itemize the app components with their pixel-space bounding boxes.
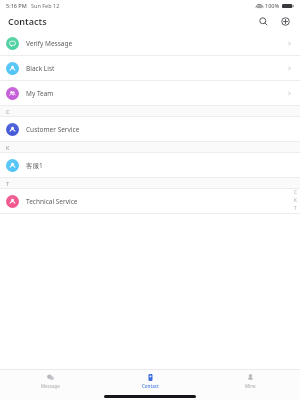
staticText: Customer Service — [26, 125, 80, 134]
staticText: 100% — [265, 2, 280, 9]
button[interactable]: 客服1 — [0, 153, 300, 177]
button[interactable]: Message — [0, 372, 100, 390]
staticText: Verify Message — [26, 39, 73, 48]
staticText: T — [6, 180, 10, 187]
button[interactable]: Add contact — [277, 13, 293, 29]
button[interactable]: Customer Service — [0, 117, 300, 141]
button[interactable]: Contact — [100, 372, 200, 390]
staticText: Sun Feb 12 — [31, 2, 60, 9]
staticText: Contacts — [8, 15, 47, 27]
staticText: Contact — [142, 383, 159, 389]
button[interactable]: My Team — [0, 81, 300, 105]
staticText: Technical Service — [26, 197, 78, 206]
button[interactable]: Search — [255, 13, 271, 29]
button[interactable]: Mine — [200, 372, 300, 390]
button[interactable]: Black List — [0, 56, 300, 80]
staticText: 客服1 — [26, 161, 43, 170]
staticText: Message — [41, 383, 60, 389]
button[interactable]: Verify Message — [0, 31, 300, 55]
staticText: C — [6, 108, 10, 115]
staticText: T — [294, 205, 297, 211]
staticText: My Team — [26, 89, 54, 98]
staticText: K — [294, 197, 297, 203]
staticText: Black List — [26, 64, 55, 73]
staticText: Mine — [245, 383, 256, 389]
staticText: K — [6, 144, 10, 151]
staticText: C — [294, 189, 297, 195]
staticText: 5:16 PM — [6, 2, 27, 9]
button[interactable]: Technical Service — [0, 189, 300, 213]
